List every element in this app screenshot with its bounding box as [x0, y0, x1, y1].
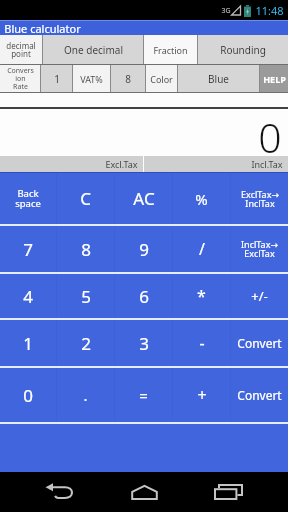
- staticText: 3G: [221, 6, 231, 16]
- staticText: Rounding: [220, 43, 266, 57]
- button[interactable]: Color: [146, 65, 177, 92]
- button[interactable]: 3: [115, 320, 172, 366]
- button[interactable]: 8: [111, 65, 145, 92]
- button[interactable]: *: [173, 274, 230, 318]
- staticText: Convert: [237, 335, 282, 351]
- staticText: 2: [81, 332, 91, 355]
- staticText: Fraction: [153, 44, 188, 56]
- staticText: Blue: [208, 72, 229, 86]
- staticText: One decimal: [64, 43, 123, 57]
- staticText: 1: [23, 332, 33, 355]
- button[interactable]: [192, 472, 288, 512]
- staticText: 5: [81, 285, 91, 308]
- button[interactable]: [0, 472, 96, 512]
- staticText: 8: [125, 72, 131, 86]
- button[interactable]: HELP: [260, 65, 288, 92]
- staticText: Blue calculator: [4, 21, 81, 35]
- button[interactable]: AC: [115, 173, 172, 224]
- button[interactable]: /: [173, 226, 230, 272]
- staticText: 11:48: [255, 3, 284, 18]
- staticText: Color: [150, 73, 173, 85]
- staticText: *: [197, 285, 206, 307]
- button[interactable]: -: [173, 320, 230, 366]
- staticText: Incl.Tax: [251, 158, 283, 170]
- button[interactable]: Excl.Tax: [0, 156, 143, 172]
- button[interactable]: Fraction: [144, 35, 197, 64]
- button[interactable]: %: [173, 173, 230, 224]
- staticText: 0: [258, 109, 282, 156]
- staticText: ExclTax→ InclTax: [241, 188, 279, 210]
- button[interactable]: Rounding: [198, 35, 288, 64]
- staticText: 0: [23, 384, 33, 407]
- staticText: Excl.Tax: [105, 158, 138, 170]
- button[interactable]: VAT%: [73, 65, 110, 92]
- button[interactable]: decimal point: [0, 35, 42, 64]
- button[interactable]: C: [57, 173, 114, 224]
- button[interactable]: ExclTax→ InclTax: [231, 173, 288, 224]
- button[interactable]: .: [57, 368, 114, 422]
- button[interactable]: +: [173, 368, 230, 422]
- button[interactable]: 7: [0, 226, 56, 272]
- button[interactable]: =: [115, 368, 172, 422]
- staticText: 8: [81, 238, 91, 261]
- staticText: 3: [139, 332, 149, 355]
- staticText: AC: [133, 187, 155, 210]
- staticText: 9: [139, 238, 149, 261]
- staticText: Back space: [15, 187, 41, 210]
- button[interactable]: 1: [0, 320, 56, 366]
- button[interactable]: +/-: [231, 274, 288, 318]
- staticText: +/-: [251, 287, 268, 305]
- button[interactable]: Back space: [0, 173, 56, 224]
- button[interactable]: 1: [41, 65, 72, 92]
- staticText: decimal point: [6, 40, 36, 59]
- button[interactable]: Convert: [231, 368, 288, 422]
- button[interactable]: One decimal: [43, 35, 143, 64]
- button[interactable]: 8: [57, 226, 114, 272]
- button[interactable]: 0: [0, 368, 56, 422]
- staticText: 4: [23, 285, 33, 308]
- button[interactable]: Convert: [231, 320, 288, 366]
- staticText: .: [83, 385, 88, 405]
- staticText: 6: [139, 285, 149, 308]
- staticText: Convert: [237, 387, 282, 403]
- staticText: VAT%: [80, 73, 103, 85]
- button[interactable]: Incl.Tax: [144, 156, 288, 172]
- staticText: InclTax→ ExclTax: [241, 238, 278, 260]
- button[interactable]: InclTax→ ExclTax: [231, 226, 288, 272]
- button[interactable]: 6: [115, 274, 172, 318]
- staticText: Convers ion Rate: [7, 66, 34, 91]
- staticText: =: [139, 385, 148, 405]
- button[interactable]: 2: [57, 320, 114, 366]
- staticText: +: [197, 384, 207, 406]
- staticText: 1: [54, 72, 60, 86]
- staticText: 7: [23, 238, 33, 261]
- button[interactable]: 9: [115, 226, 172, 272]
- staticText: %: [195, 189, 208, 209]
- button[interactable]: 4: [0, 274, 56, 318]
- button[interactable]: Convers ion Rate: [0, 65, 40, 92]
- staticText: -: [199, 332, 205, 354]
- button[interactable]: 5: [57, 274, 114, 318]
- button[interactable]: [96, 472, 192, 512]
- staticText: HELP: [263, 73, 286, 85]
- staticText: /: [199, 238, 205, 260]
- button[interactable]: Blue: [178, 65, 259, 92]
- staticText: C: [80, 187, 91, 210]
